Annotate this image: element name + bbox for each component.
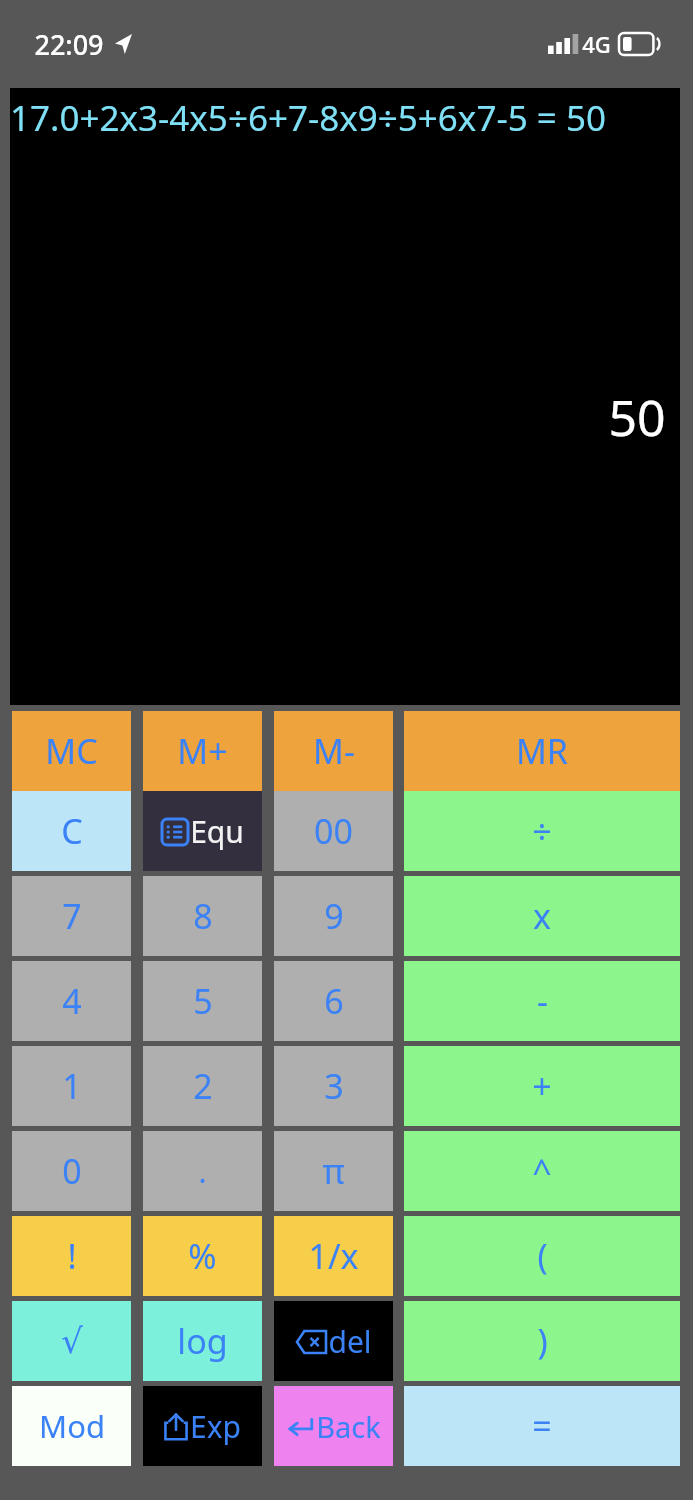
- staticText: M+: [177, 728, 228, 774]
- staticText: !: [67, 1233, 77, 1279]
- staticText: Equ: [190, 811, 244, 852]
- staticText: π: [322, 1148, 345, 1194]
- button[interactable]: Export: [143, 1386, 262, 1466]
- staticText: Back: [316, 1407, 381, 1446]
- button[interactable]: =: [404, 1386, 680, 1466]
- other: Export: [164, 1413, 188, 1440]
- button[interactable]: Equations: [143, 791, 262, 871]
- staticText: (: [537, 1233, 548, 1279]
- staticText: ^: [532, 1148, 552, 1194]
- staticText: 2: [193, 1063, 213, 1109]
- other: Back: [286, 1415, 314, 1439]
- staticText: log: [177, 1318, 228, 1364]
- button[interactable]: Back: [274, 1386, 393, 1466]
- staticText: Mod: [39, 1405, 105, 1447]
- button[interactable]: 8: [143, 876, 262, 956]
- button[interactable]: (: [404, 1216, 680, 1296]
- button[interactable]: MR: [404, 711, 680, 791]
- staticText: 6: [324, 978, 344, 1024]
- staticText: %: [188, 1233, 217, 1279]
- button[interactable]: x: [404, 876, 680, 956]
- button[interactable]: ^: [404, 1131, 680, 1211]
- staticText: ÷: [532, 808, 552, 854]
- button[interactable]: 6: [274, 961, 393, 1041]
- staticText: del: [328, 1321, 372, 1362]
- button[interactable]: 1: [12, 1046, 131, 1126]
- button[interactable]: +: [404, 1046, 680, 1126]
- button[interactable]: !: [12, 1216, 131, 1296]
- button[interactable]: Mod: [12, 1386, 131, 1466]
- button[interactable]: 3: [274, 1046, 393, 1126]
- button[interactable]: C: [12, 791, 131, 871]
- staticText: 22:09: [34, 26, 104, 63]
- button[interactable]: %: [143, 1216, 262, 1296]
- staticText: .: [198, 1151, 207, 1192]
- staticText: MR: [516, 728, 568, 774]
- staticText: 50: [608, 383, 666, 451]
- staticText: √: [61, 1321, 83, 1361]
- staticText: 5: [193, 978, 213, 1024]
- staticText: 00: [314, 808, 353, 854]
- button[interactable]: 0: [12, 1131, 131, 1211]
- staticText: 1/x: [308, 1233, 359, 1279]
- button[interactable]: 4: [12, 961, 131, 1041]
- staticText: M-: [313, 728, 355, 774]
- staticText: -: [537, 978, 548, 1024]
- button[interactable]: 2: [143, 1046, 262, 1126]
- button[interactable]: M-: [274, 711, 393, 791]
- button[interactable]: ÷: [404, 791, 680, 871]
- other: Delete: [296, 1330, 326, 1354]
- staticText: 4: [62, 978, 82, 1024]
- staticText: 1: [62, 1063, 82, 1109]
- staticText: 8: [193, 893, 213, 939]
- staticText: 9: [324, 893, 344, 939]
- button[interactable]: √: [12, 1301, 131, 1381]
- staticText: Exp: [190, 1406, 241, 1447]
- button[interactable]: 5: [143, 961, 262, 1041]
- staticText: 0: [62, 1148, 82, 1194]
- staticText: 3: [324, 1063, 344, 1109]
- button[interactable]: 9: [274, 876, 393, 956]
- button[interactable]: .: [143, 1131, 262, 1211]
- staticText: =: [532, 1403, 552, 1449]
- button[interactable]: 7: [12, 876, 131, 956]
- button[interactable]: ): [404, 1301, 680, 1381]
- staticText: ): [537, 1318, 548, 1364]
- staticText: +: [532, 1063, 552, 1109]
- staticText: MC: [45, 728, 98, 774]
- staticText: 7: [62, 893, 82, 939]
- staticText: 17.0+2x3-4x5÷6+7-8x9÷5+6x7-5 = 50: [10, 94, 606, 142]
- button[interactable]: M+: [143, 711, 262, 791]
- button[interactable]: Delete: [274, 1301, 393, 1381]
- button[interactable]: log: [143, 1301, 262, 1381]
- button[interactable]: 1/x: [274, 1216, 393, 1296]
- button[interactable]: 00: [274, 791, 393, 871]
- button[interactable]: π: [274, 1131, 393, 1211]
- button[interactable]: MC: [12, 711, 131, 791]
- other: Equations: [162, 819, 188, 845]
- staticText: x: [533, 893, 551, 939]
- staticText: 4G: [582, 29, 611, 59]
- staticText: C: [61, 808, 83, 854]
- button[interactable]: -: [404, 961, 680, 1041]
